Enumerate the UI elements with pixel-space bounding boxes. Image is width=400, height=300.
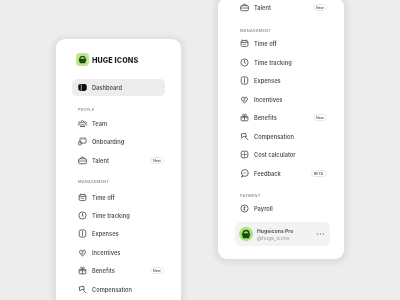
staticText: Onboarding bbox=[92, 138, 125, 145]
staticText: Benefits bbox=[92, 267, 115, 274]
button[interactable]: Cost calculator bbox=[234, 146, 328, 163]
staticText: PAYMENT bbox=[240, 193, 261, 198]
staticText: Compensation bbox=[254, 133, 294, 140]
button[interactable]: Hugeicons Pro bbox=[235, 222, 330, 246]
button[interactable]: Dashboard bbox=[72, 79, 165, 96]
other: More options bbox=[315, 228, 327, 240]
staticText: Expenses bbox=[254, 77, 281, 84]
staticText: Expenses bbox=[92, 230, 119, 237]
staticText: Compensation bbox=[92, 286, 132, 293]
button[interactable]: Time off bbox=[234, 35, 328, 52]
staticText: New bbox=[316, 6, 324, 10]
staticText: New bbox=[316, 116, 324, 120]
button[interactable]: Time off bbox=[72, 189, 165, 206]
button[interactable]: Talent bbox=[72, 152, 165, 169]
staticText: Payroll bbox=[254, 205, 273, 212]
staticText: Talent bbox=[92, 157, 109, 164]
staticText: PEOPLE bbox=[78, 107, 95, 112]
staticText: Dashboard bbox=[92, 84, 122, 91]
staticText: BETA bbox=[314, 172, 324, 176]
staticText: New bbox=[153, 159, 161, 163]
button[interactable]: Compensation bbox=[234, 128, 328, 145]
button[interactable]: Expenses bbox=[234, 72, 328, 89]
staticText: MANAGEMENT bbox=[78, 179, 110, 184]
staticText: Cost calculator bbox=[254, 151, 296, 158]
button[interactable]: Incentives bbox=[234, 91, 328, 108]
button[interactable]: Payroll bbox=[234, 200, 328, 217]
staticText: @huge_icons bbox=[257, 235, 290, 241]
button[interactable]: Feedback bbox=[234, 165, 328, 182]
staticText: MANAGEMENT bbox=[240, 28, 272, 33]
staticText: Time off bbox=[254, 40, 277, 47]
staticText: Incentives bbox=[92, 249, 121, 256]
staticText: Talent bbox=[254, 4, 271, 11]
button[interactable]: Team bbox=[72, 115, 165, 132]
staticText: New bbox=[153, 269, 161, 273]
button[interactable]: Benefits bbox=[234, 109, 328, 126]
staticText: Incentives bbox=[254, 96, 283, 103]
staticText: Time off bbox=[92, 194, 115, 201]
button[interactable]: Talent bbox=[234, 0, 328, 16]
button[interactable]: Onboarding bbox=[72, 133, 165, 150]
button[interactable]: Time tracking bbox=[234, 54, 328, 71]
staticText: HUGE ICONS bbox=[92, 56, 139, 65]
staticText: Team bbox=[92, 120, 108, 127]
staticText: Feedback bbox=[254, 170, 281, 177]
button[interactable]: Expenses bbox=[72, 225, 165, 242]
staticText: Benefits bbox=[254, 114, 277, 121]
staticText: Time tracking bbox=[92, 212, 130, 219]
staticText: Time tracking bbox=[254, 59, 292, 66]
staticText: Hugeicons Pro bbox=[257, 228, 294, 234]
button[interactable]: Time tracking bbox=[72, 207, 165, 224]
button[interactable]: Benefits bbox=[72, 262, 165, 279]
button[interactable]: Incentives bbox=[72, 244, 165, 261]
button[interactable]: Compensation bbox=[72, 281, 165, 298]
